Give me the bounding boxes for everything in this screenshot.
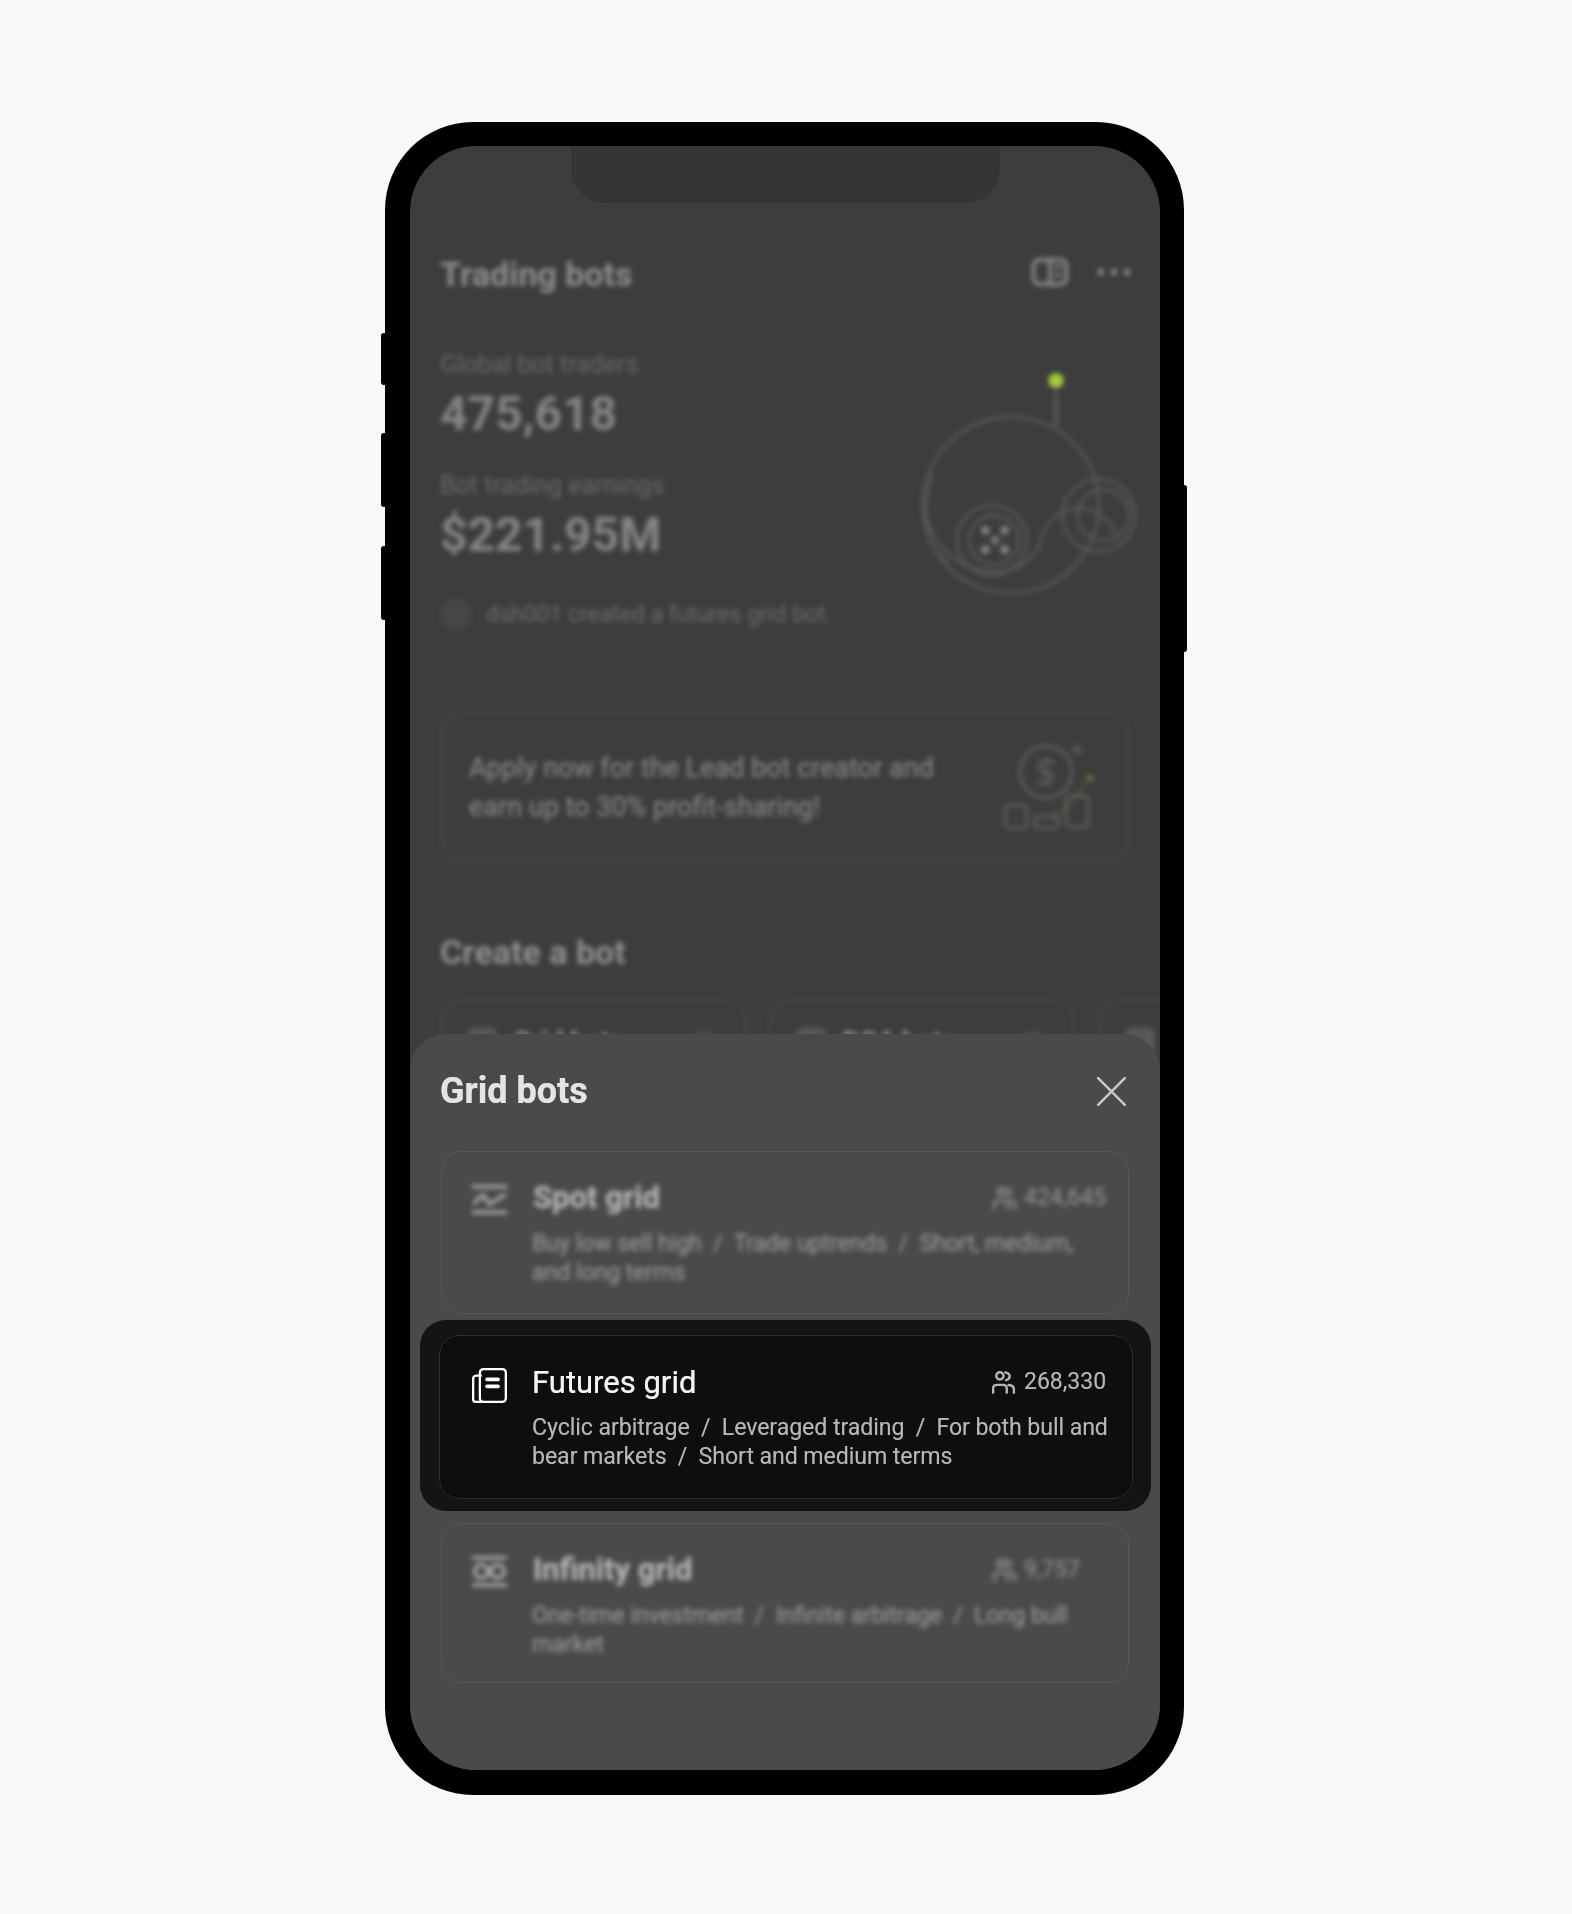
button[interactable]: Grid bots <box>441 1000 746 1150</box>
button[interactable]: Infinity grid <box>441 1523 1129 1683</box>
staticText: Grid bots <box>440 1070 588 1112</box>
button[interactable]: Tutorial <box>1026 248 1074 296</box>
button[interactable]: Spot grid <box>441 1151 1129 1314</box>
staticText: 424,645 <box>1024 1184 1107 1211</box>
staticText: Spot grid <box>533 1179 660 1215</box>
staticText: Global bot traders <box>440 350 639 379</box>
button[interactable]: Apply now for the Lead bot creator and e… <box>441 712 1129 862</box>
staticText: Grid bots <box>513 1026 624 1058</box>
staticText: Create a bot <box>440 932 626 972</box>
staticText: One-time investment / Infinite arbitrage… <box>532 1601 1129 1658</box>
staticText: Apply now for the Lead bot creator and e… <box>469 752 934 822</box>
button[interactable]: More options <box>1090 248 1138 296</box>
button[interactable]: Sig <box>1099 1000 1160 1150</box>
staticText: DCA bots <box>842 1026 956 1058</box>
staticText: 268,330 <box>1024 1368 1107 1395</box>
staticText: Trading bots <box>440 254 633 294</box>
staticText: Futures grid <box>532 1364 697 1400</box>
staticText: $221.95M <box>440 506 662 562</box>
staticText: 9,757 <box>1024 1556 1081 1583</box>
button[interactable]: Close <box>1084 1064 1138 1118</box>
button[interactable]: DCA bots <box>770 1000 1075 1150</box>
button[interactable]: Futures grid <box>420 1320 1151 1511</box>
staticText: Bot trading earnings <box>440 471 665 500</box>
staticText: Buy low sell high / Trade uptrends / Sho… <box>532 1229 1129 1286</box>
staticText: 475,618 <box>440 385 618 441</box>
staticText: dsh001 created a futures grid bot. <box>486 601 832 628</box>
staticText: Infinity grid <box>533 1551 693 1587</box>
staticText: Cyclic arbitrage / Leveraged trading / F… <box>532 1413 1133 1470</box>
